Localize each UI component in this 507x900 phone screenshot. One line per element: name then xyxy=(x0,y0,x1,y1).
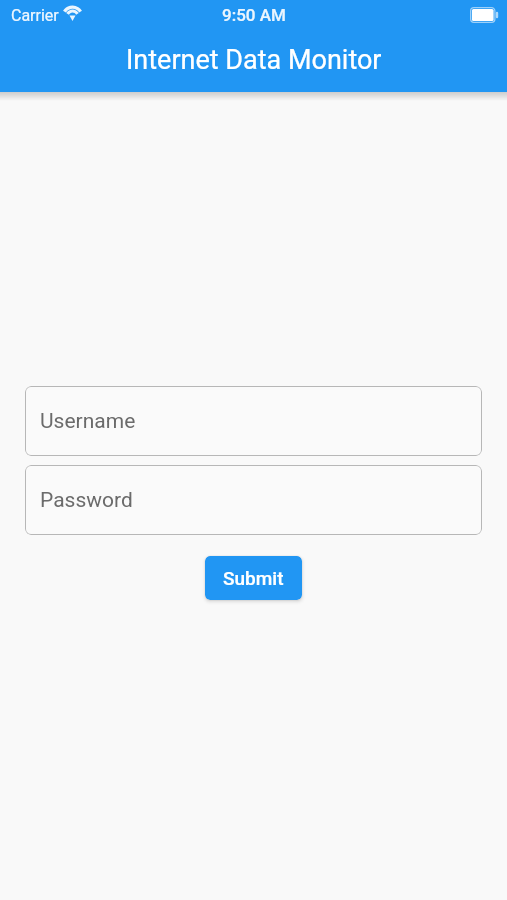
button[interactable]: Password xyxy=(25,465,482,535)
other: Wi-Fi signal xyxy=(63,6,82,23)
staticText: Username xyxy=(40,409,136,434)
staticText: Submit xyxy=(223,567,284,589)
staticText: Password xyxy=(40,488,133,513)
staticText: Carrier xyxy=(11,6,59,25)
staticText: Internet Data Monitor xyxy=(126,44,382,76)
button[interactable]: Submit xyxy=(205,556,302,600)
other: Battery full xyxy=(470,7,499,23)
button[interactable]: Username xyxy=(25,386,482,456)
staticText: 9:50 AM xyxy=(222,5,286,25)
